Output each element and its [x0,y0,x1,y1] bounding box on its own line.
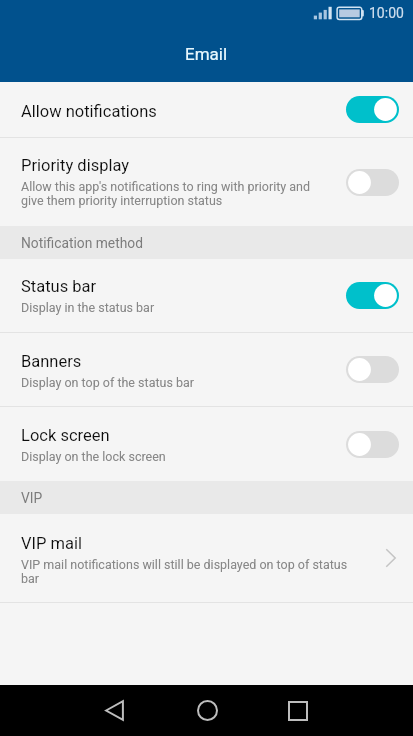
staticText: Lock screen [21,426,110,445]
staticText: VIP [21,490,43,506]
staticText: Notification method [21,235,143,251]
other: Open VIP mail [373,540,409,576]
button[interactable]: VIP mail [0,514,413,602]
button[interactable]: Allow notifications [0,82,413,137]
button[interactable]: Switch off [346,169,399,196]
staticText: Display in the status bar [21,300,155,315]
button[interactable]: Banners [0,333,413,406]
staticText: VIP mail notifications will still be dis… [21,557,348,586]
button[interactable]: Recents [262,685,334,736]
button[interactable]: Switch off [346,356,399,383]
button[interactable]: Switch on [346,282,399,309]
button[interactable]: Lock screen [0,407,413,481]
staticText: Status bar [21,277,97,296]
button[interactable]: Home [171,685,243,736]
button[interactable]: Switch on [346,96,399,123]
staticText: Allow this app's notifications to ring w… [21,179,311,208]
staticText: VIP mail [21,534,82,553]
button[interactable]: Switch off [346,431,399,458]
button[interactable]: Back [78,685,150,736]
staticText: Email [185,44,228,64]
staticText: Banners [21,352,82,371]
staticText: Display on the lock screen [21,449,166,464]
button[interactable]: Status bar [0,259,413,332]
staticText: Display on top of the status bar [21,375,195,390]
staticText: Allow notifications [21,102,157,121]
staticText: Priority display [21,156,130,175]
staticText: 10:00 [369,5,404,21]
button[interactable]: Priority display [0,138,413,226]
